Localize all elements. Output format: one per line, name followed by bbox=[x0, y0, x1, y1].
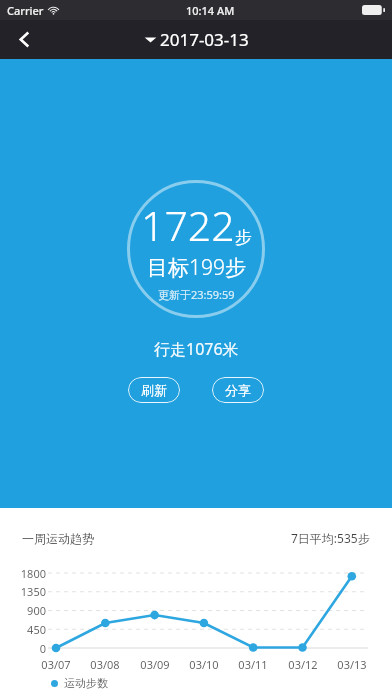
staticText: 10:14 AM bbox=[186, 3, 235, 18]
staticText: 1800 bbox=[4, 566, 46, 581]
button[interactable]: Back bbox=[0, 20, 48, 59]
staticText: 03/08 bbox=[83, 657, 127, 672]
button[interactable]: 刷新 bbox=[128, 377, 180, 403]
staticText: 0 bbox=[4, 641, 46, 656]
staticText: 7日平均:535步 bbox=[291, 530, 370, 546]
staticText: 03/13 bbox=[330, 657, 374, 672]
staticText: 03/10 bbox=[182, 657, 226, 672]
button[interactable]: 2017-03-13 bbox=[140, 28, 253, 51]
staticText: 运动步数 bbox=[64, 676, 108, 690]
staticText: 分享 bbox=[225, 382, 251, 398]
staticText: 一周运动趋势 bbox=[22, 531, 94, 546]
staticText: 2017-03-13 bbox=[160, 28, 249, 51]
staticText: 更新于23:59:59 bbox=[158, 287, 235, 302]
staticText: 行走1076米 bbox=[154, 338, 239, 360]
button[interactable]: 分享 bbox=[212, 377, 264, 403]
staticText: 1722 bbox=[141, 197, 235, 253]
staticText: 03/09 bbox=[133, 657, 177, 672]
staticText: 步 bbox=[235, 227, 252, 248]
staticText: 900 bbox=[4, 603, 46, 618]
staticText: 450 bbox=[4, 622, 46, 637]
staticText: 1350 bbox=[4, 584, 46, 599]
staticText: 目标199步 bbox=[147, 253, 246, 282]
staticText: 03/07 bbox=[34, 657, 78, 672]
staticText: 03/12 bbox=[281, 657, 325, 672]
staticText: Carrier bbox=[7, 3, 44, 18]
staticText: 刷新 bbox=[141, 382, 167, 398]
staticText: 03/11 bbox=[231, 657, 275, 672]
